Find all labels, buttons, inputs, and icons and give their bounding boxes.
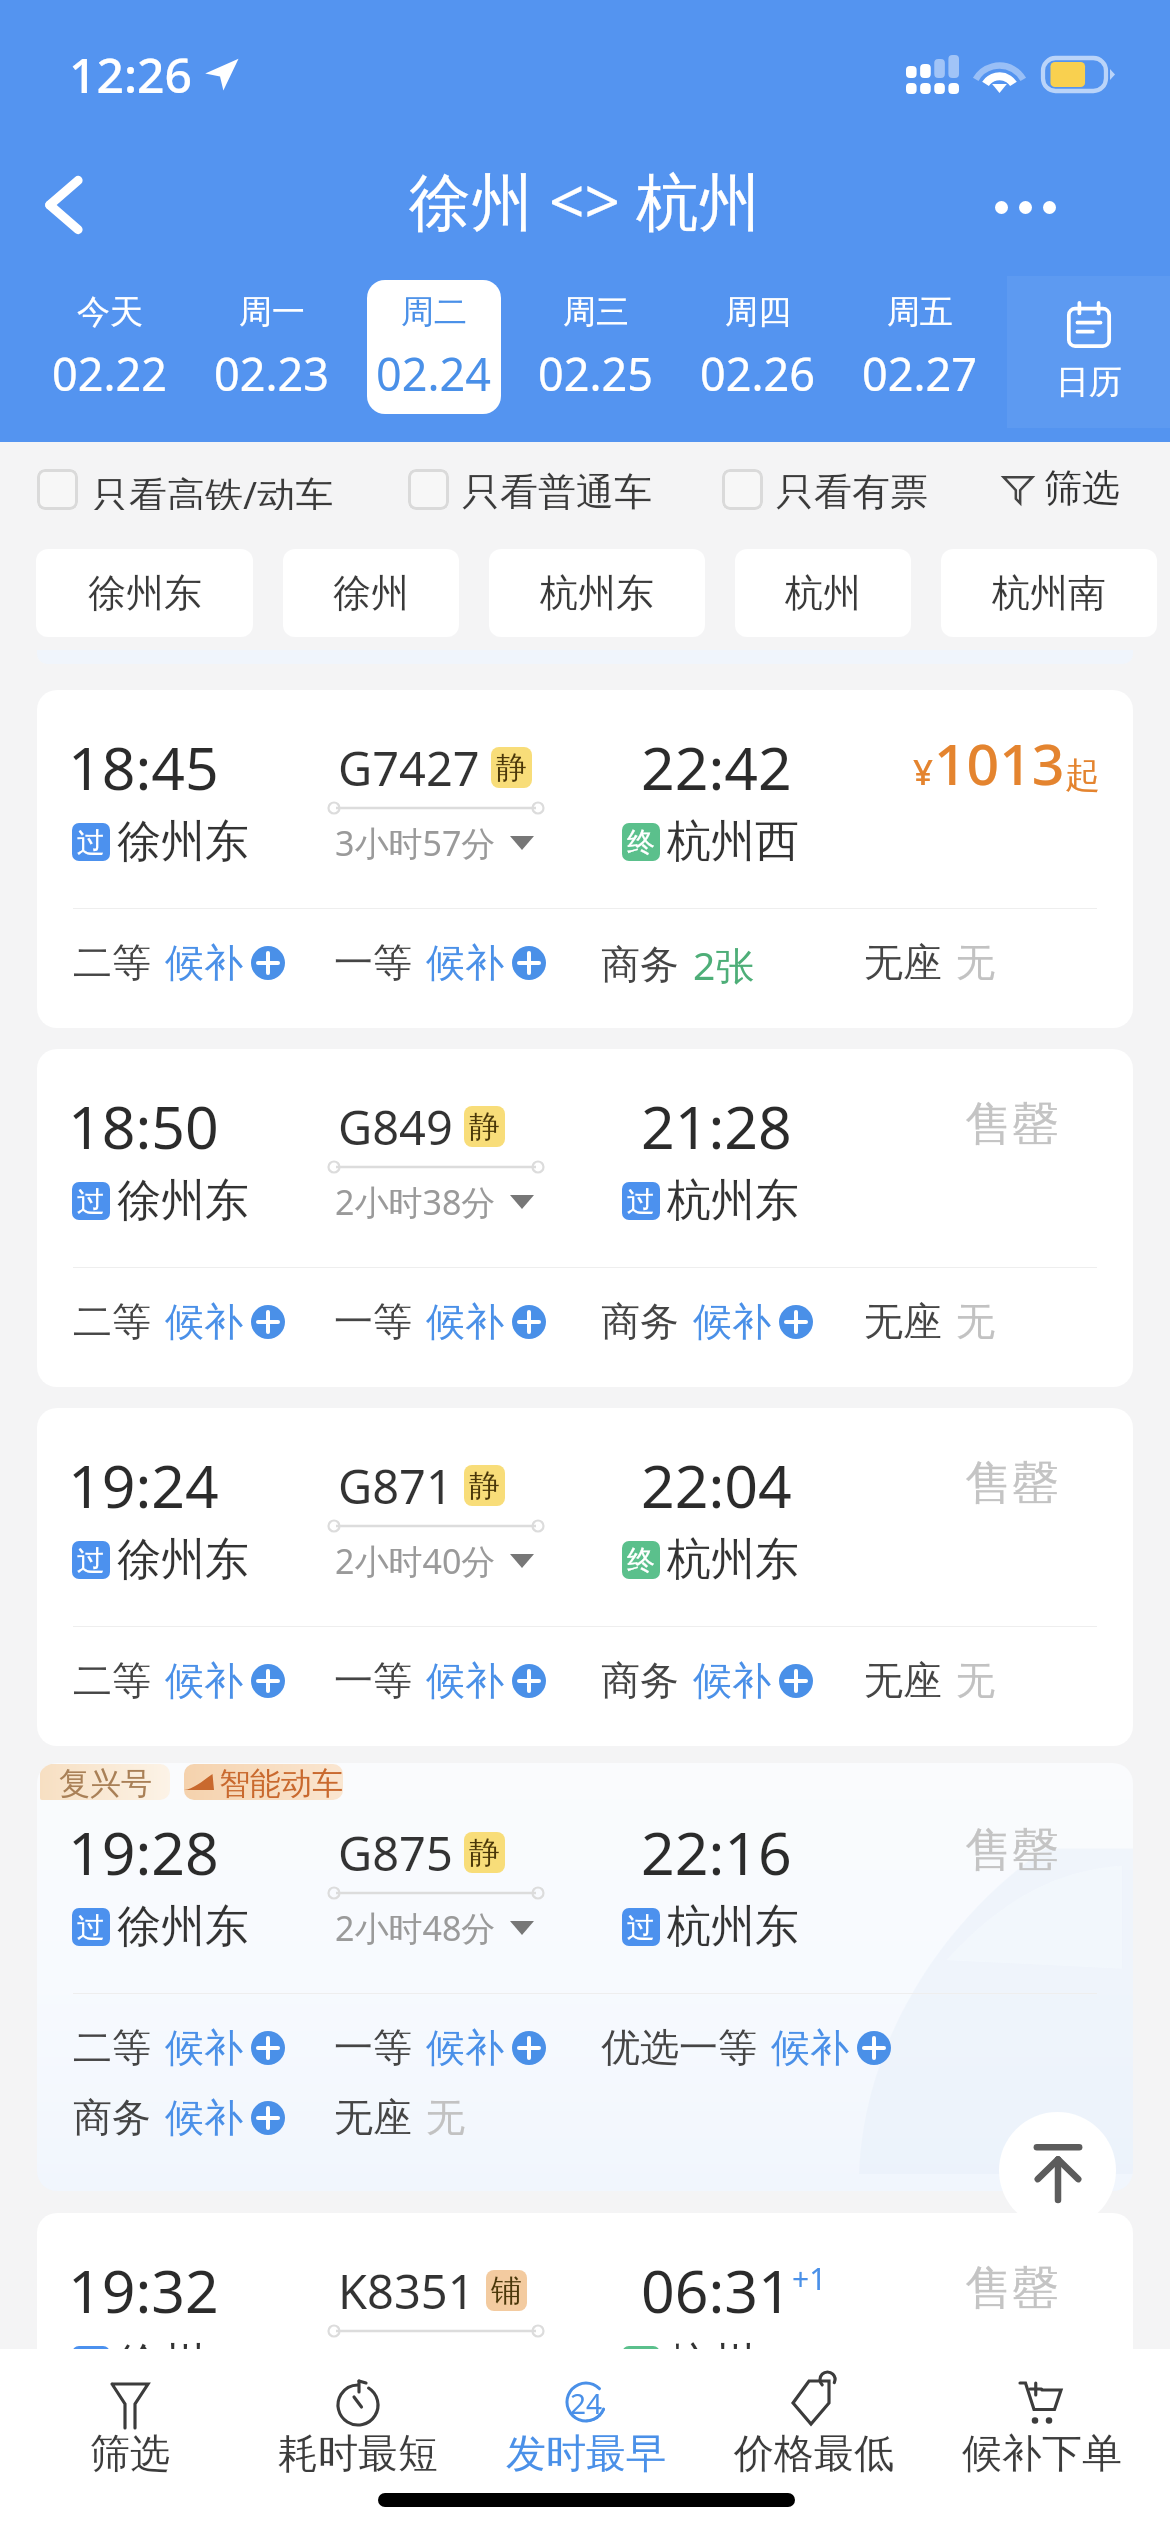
staticText: 22:04 <box>641 1445 792 1525</box>
button[interactable]: 二等 <box>73 1297 285 1346</box>
button[interactable]: 18:45 <box>37 690 1133 1028</box>
staticText: 候补 <box>165 1297 243 1346</box>
button[interactable]: 周四 <box>677 280 839 414</box>
staticText: 筛选 <box>1044 464 1120 512</box>
button[interactable]: 一等 <box>334 1297 546 1346</box>
staticText: 静 <box>496 748 527 787</box>
staticText: 耗时最短 <box>278 2428 438 2478</box>
button[interactable]: 周二 <box>353 280 515 414</box>
button[interactable]: 一等 <box>334 938 546 987</box>
button[interactable]: 商务 <box>601 1656 813 1705</box>
staticText: 02.27 <box>862 343 978 404</box>
staticText: 19:24 <box>68 1445 219 1525</box>
button[interactable]: 杭州南 <box>941 549 1157 637</box>
staticText: 徐州东 <box>117 1173 249 1228</box>
button[interactable]: Back <box>18 160 108 250</box>
button[interactable]: 只看有票 <box>722 468 928 510</box>
staticText: 杭州南 <box>992 569 1106 617</box>
staticText: 智能动车 <box>219 1764 343 1800</box>
button[interactable]: 今天 <box>29 280 191 414</box>
staticText: 候补下单 <box>962 2428 1122 2478</box>
staticText: 2小时48分 <box>335 1905 496 1951</box>
staticText: 杭州东 <box>667 1532 799 1587</box>
staticText: 售罄 <box>965 1095 1059 1154</box>
staticText: 02.26 <box>700 343 816 404</box>
button[interactable]: 无座 <box>864 1656 995 1705</box>
staticText: 静 <box>469 1466 500 1505</box>
staticText: 候补 <box>165 2023 243 2072</box>
button[interactable]: 价格最低 <box>700 2349 928 2532</box>
staticText: 无座 <box>864 1297 942 1346</box>
button[interactable]: 19:24 <box>37 1408 1133 1746</box>
staticText: 过 <box>77 1543 105 1578</box>
button[interactable]: 徐州 <box>283 549 459 637</box>
staticText: 徐州 <box>117 2337 205 2392</box>
staticText: 周二 <box>401 291 467 333</box>
staticText: G849 <box>338 1095 453 1159</box>
staticText: 商务 <box>73 2093 151 2142</box>
staticText: 周一 <box>239 291 305 333</box>
button[interactable]: 周一 <box>191 280 353 414</box>
button[interactable]: 商务 <box>601 1297 813 1346</box>
button[interactable]: 18:50 <box>37 1049 1133 1387</box>
staticText: 杭州西 <box>667 814 799 869</box>
staticText: 候补 <box>426 2023 504 2072</box>
staticText: 22:16 <box>641 1812 792 1892</box>
staticText: 一等 <box>334 2023 412 2072</box>
button[interactable]: Scroll to top <box>999 2112 1116 2229</box>
button[interactable]: 二等 <box>73 2023 285 2072</box>
staticText: 铺 <box>491 2271 522 2310</box>
button[interactable]: 复兴号 <box>37 1763 1133 2191</box>
button[interactable]: 一等 <box>334 2023 546 2072</box>
button[interactable]: 无座 <box>864 938 995 987</box>
button[interactable]: 耗时最短 <box>244 2349 472 2532</box>
button[interactable]: 无座 <box>334 2093 465 2142</box>
staticText: 起 <box>1065 753 1100 797</box>
staticText: 过 <box>627 1910 655 1945</box>
button[interactable]: More options <box>981 163 1069 251</box>
button[interactable]: 周五 <box>839 280 1001 414</box>
button[interactable]: 商务 <box>601 938 755 991</box>
staticText: 2小时40分 <box>335 1538 496 1584</box>
button[interactable]: 筛选 <box>16 2349 244 2532</box>
button[interactable]: 优选一等 <box>601 2023 891 2072</box>
button[interactable]: 日历 <box>1007 276 1170 428</box>
staticText: 06:31 <box>641 2250 792 2330</box>
button[interactable]: 一等 <box>334 1656 546 1705</box>
staticText: 无座 <box>864 1656 942 1705</box>
button[interactable]: 24 <box>472 2349 700 2532</box>
staticText: G871 <box>338 1454 453 1518</box>
staticText: 二等 <box>73 1656 151 1705</box>
button[interactable]: 只看普通车 <box>408 468 652 510</box>
staticText: 二等 <box>73 938 151 987</box>
staticText: 周五 <box>887 291 953 333</box>
staticText: 候补 <box>426 1297 504 1346</box>
staticText: ¥ <box>913 748 934 796</box>
staticText: 二等 <box>73 2023 151 2072</box>
button[interactable]: 无座 <box>864 1297 995 1346</box>
button[interactable]: 周三 <box>515 280 677 414</box>
staticText: 周四 <box>725 291 791 333</box>
button[interactable]: 杭州东 <box>489 549 705 637</box>
staticText: 无 <box>426 2093 465 2142</box>
button[interactable]: 杭州 <box>735 549 911 637</box>
button[interactable]: 二等 <box>73 938 285 987</box>
staticText: 杭州东 <box>667 1899 799 1954</box>
staticText: 徐州东 <box>88 569 202 617</box>
button[interactable]: 筛选 <box>1000 462 1120 514</box>
staticText: 终 <box>627 2348 655 2383</box>
button[interactable]: 19:32 <box>37 2213 1133 2413</box>
button[interactable]: 二等 <box>73 1656 285 1705</box>
button[interactable]: 只看高铁/动车 <box>37 468 334 510</box>
staticText: +1 <box>792 2258 827 2299</box>
staticText: 售罄 <box>965 1821 1059 1880</box>
staticText: 徐州东 <box>117 814 249 869</box>
staticText: 候补 <box>771 2023 849 2072</box>
button[interactable]: 商务 <box>73 2093 285 2142</box>
staticText: 过 <box>77 1910 105 1945</box>
button[interactable]: 徐州东 <box>36 549 253 637</box>
staticText: 徐州东 <box>117 1532 249 1587</box>
staticText: 静 <box>469 1833 500 1872</box>
button[interactable]: 候补下单 <box>928 2349 1156 2532</box>
staticText: 复兴号 <box>59 1764 152 1800</box>
